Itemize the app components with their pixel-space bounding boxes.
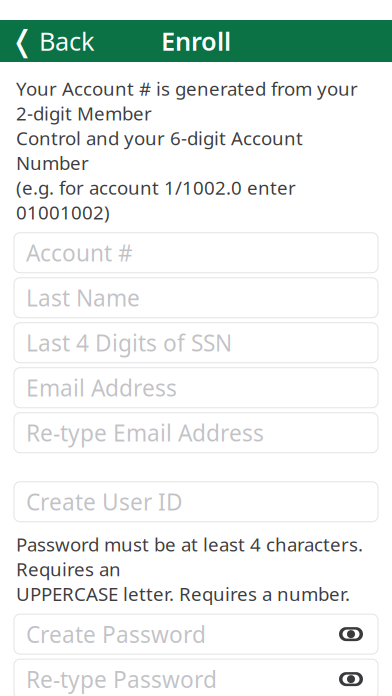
staticText: Re-type Email Address [26, 418, 264, 448]
staticText: ❬ [10, 24, 35, 58]
staticText: Control and your 6-digit Account Number [16, 126, 303, 175]
staticText: Enroll [161, 24, 231, 58]
staticText: (e.g. for account 1/1002.0 enter 0100100… [16, 175, 296, 225]
staticText: Re-type Password [26, 664, 217, 694]
staticText: Back [39, 24, 95, 58]
button[interactable]: Show Create Password [336, 619, 366, 649]
staticText: 3:21 PM [189, 0, 256, 21]
staticText: Password must be at least 4 characters. … [16, 532, 363, 581]
staticText: Create User ID [26, 487, 183, 517]
staticText: Create Password [26, 619, 206, 649]
staticText: Email Address [26, 373, 177, 403]
staticText: Last Name [26, 283, 140, 313]
button[interactable]: Show Re-type Password [336, 664, 366, 694]
button[interactable]: ❬ [0, 20, 105, 62]
staticText: ᯤ [66, 0, 87, 21]
staticText: UPPERCASE letter. Requires a number. [16, 581, 350, 606]
staticText: Carrier [10, 0, 66, 21]
staticText: Last 4 Digits of SSN [26, 328, 232, 358]
staticText: Account # [26, 238, 133, 268]
staticText: Your Account # is generated from your 2-… [16, 76, 358, 126]
